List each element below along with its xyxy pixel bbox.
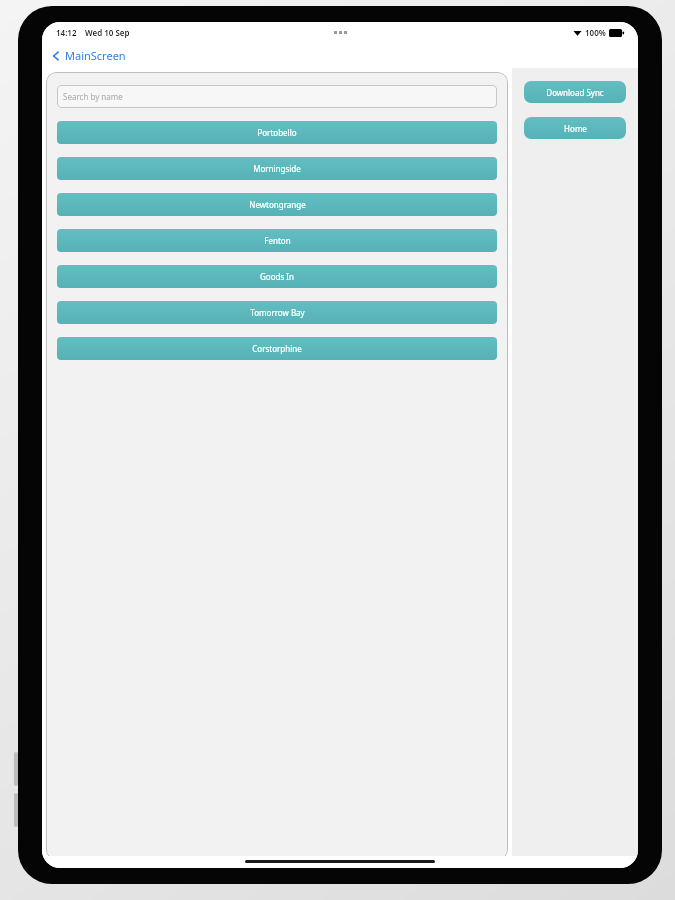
button[interactable]: MainScreen <box>48 46 128 65</box>
staticText: Wed 10 Sep <box>85 27 130 38</box>
staticText: Home <box>564 123 587 134</box>
staticText: Portobello <box>257 127 297 138</box>
staticText: Download Sync <box>546 87 604 98</box>
staticText: Corstorphine <box>252 343 302 354</box>
button[interactable]: Goods In <box>57 265 497 288</box>
button[interactable]: Portobello <box>57 121 497 144</box>
staticText: Search by name <box>63 91 123 102</box>
staticText: Fenton <box>264 235 291 246</box>
staticText: MainScreen <box>65 48 126 63</box>
button[interactable]: Fenton <box>57 229 497 252</box>
button[interactable]: Corstorphine <box>57 337 497 360</box>
staticText: Morningside <box>253 163 301 174</box>
button[interactable]: Morningside <box>57 157 497 180</box>
button[interactable]: Home <box>524 117 626 139</box>
staticText: Goods In <box>260 271 294 282</box>
button[interactable]: Newtongrange <box>57 193 497 216</box>
staticText: 100% <box>585 27 606 38</box>
staticText: Newtongrange <box>249 199 306 210</box>
button[interactable]: Download Sync <box>524 81 626 103</box>
button[interactable]: Tomorrow Bay <box>57 301 497 324</box>
staticText: 14:12 <box>56 27 77 38</box>
button[interactable]: Search by name <box>57 85 497 108</box>
staticText: Tomorrow Bay <box>250 307 305 318</box>
